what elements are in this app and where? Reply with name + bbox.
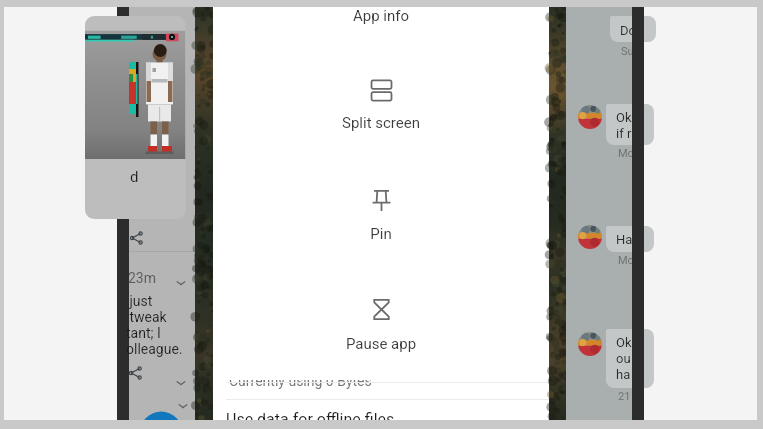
button[interactable]: Pin bbox=[213, 172, 549, 282]
staticText: Use data for offline files bbox=[226, 410, 395, 420]
staticText: App info bbox=[213, 7, 549, 25]
staticText: 21 bbox=[618, 390, 631, 403]
button[interactable]: Share bbox=[130, 231, 144, 245]
staticText: 23m bbox=[128, 270, 157, 286]
staticText: Ok if r bbox=[616, 110, 632, 141]
staticText: Ok ou ha bbox=[616, 335, 632, 382]
staticText: Currently using 0 Bytes bbox=[229, 373, 372, 389]
staticText: Do bbox=[620, 23, 636, 38]
staticText: Su bbox=[621, 45, 634, 58]
staticText: d bbox=[130, 168, 139, 186]
staticText: just tweak tant; I olleague. bbox=[126, 293, 183, 357]
staticText: Pause app bbox=[213, 335, 549, 353]
button[interactable]: Share bbox=[129, 366, 143, 380]
staticText: Pin bbox=[213, 225, 549, 243]
button[interactable]: d bbox=[129, 7, 195, 420]
staticText: Mo bbox=[618, 254, 634, 267]
button[interactable]: Pause app bbox=[213, 282, 549, 380]
staticText: Ha bbox=[616, 232, 633, 247]
button[interactable]: Do bbox=[566, 7, 632, 420]
button[interactable]: Split screen bbox=[213, 62, 549, 172]
staticText: Split screen bbox=[213, 114, 549, 132]
button[interactable]: App info bbox=[213, 7, 549, 62]
staticText: Mo bbox=[618, 147, 634, 160]
